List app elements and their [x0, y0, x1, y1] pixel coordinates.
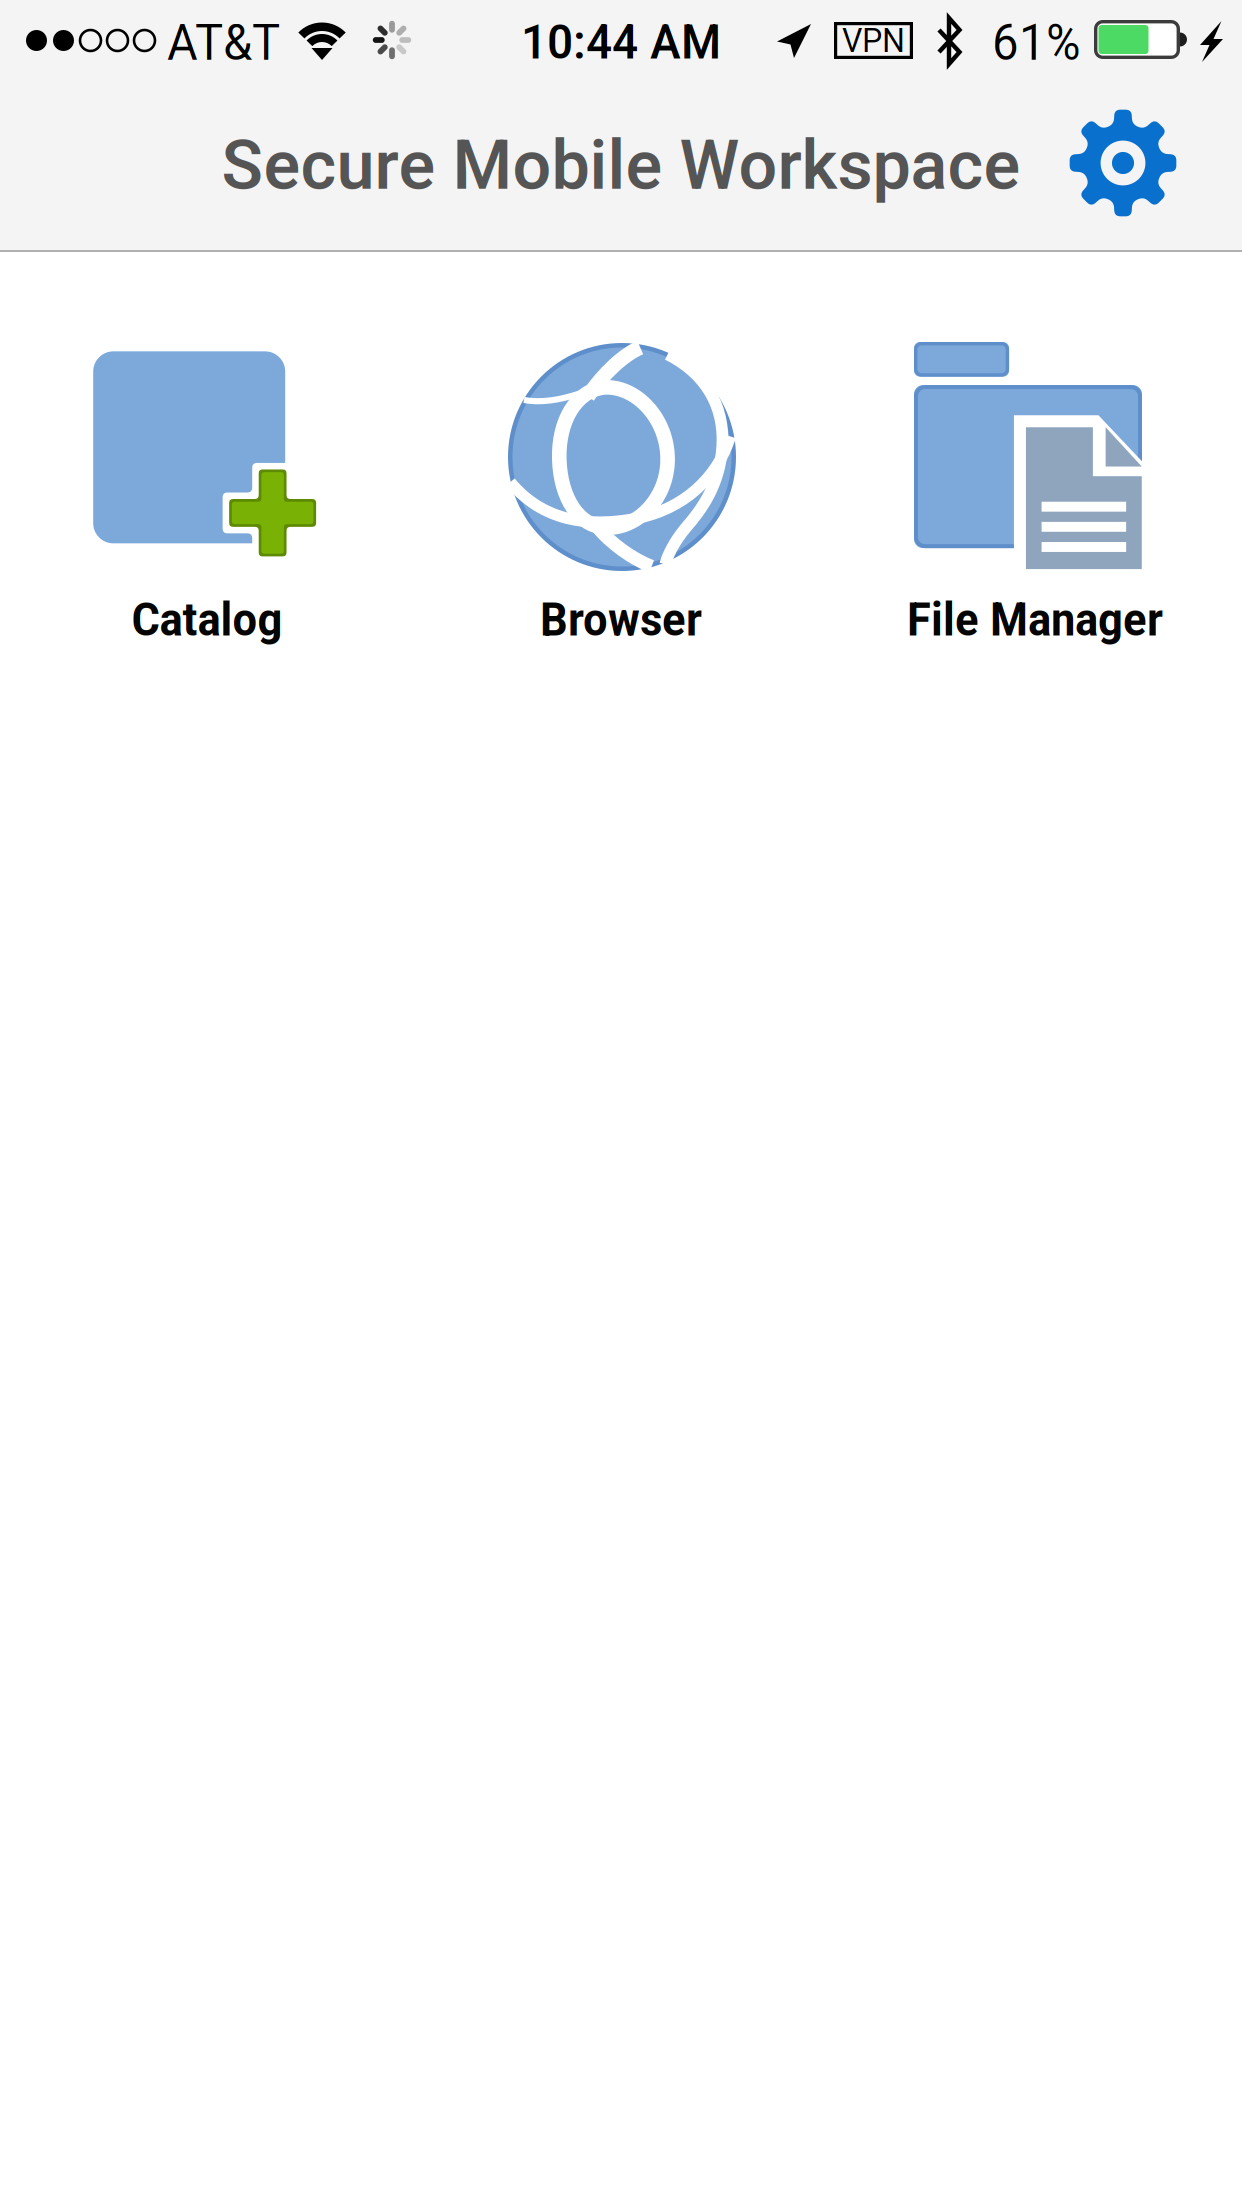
button[interactable]: Catalog: [0, 338, 414, 678]
button[interactable]: Settings: [1047, 87, 1199, 239]
staticText: Browser: [540, 593, 702, 646]
staticText: AT&T: [167, 14, 280, 72]
staticText: VPN: [842, 21, 905, 60]
staticText: Catalog: [131, 593, 282, 646]
staticText: 61%: [992, 14, 1081, 72]
button[interactable]: Browser: [414, 338, 828, 678]
button[interactable]: File Manager: [828, 338, 1242, 678]
staticText: File Manager: [907, 593, 1163, 646]
staticText: 10:44 AM: [521, 14, 721, 70]
staticText: Secure Mobile Workspace: [221, 124, 1020, 206]
